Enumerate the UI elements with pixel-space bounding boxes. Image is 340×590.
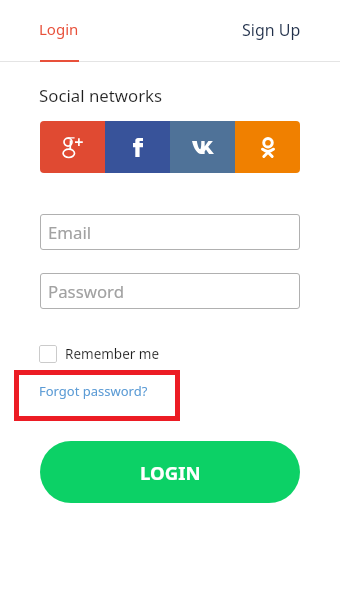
button[interactable]: Sign Up bbox=[170, 0, 340, 62]
button[interactable]: Login bbox=[0, 0, 170, 62]
button[interactable]: VKontakte bbox=[170, 121, 235, 173]
staticText: Forgot password? bbox=[39, 382, 148, 400]
staticText: Remember me bbox=[65, 345, 160, 363]
staticText: Sign Up bbox=[242, 19, 301, 41]
staticText: Password bbox=[48, 280, 124, 303]
staticText: Email bbox=[48, 221, 92, 244]
button[interactable]: Email bbox=[40, 214, 300, 250]
button[interactable]: Google Plus bbox=[40, 121, 105, 173]
button[interactable]: Remember me bbox=[39, 345, 160, 363]
staticText: LOGIN bbox=[140, 460, 201, 485]
button[interactable]: Forgot password? bbox=[33, 379, 153, 403]
button[interactable]: Password bbox=[40, 273, 300, 309]
button[interactable]: Facebook bbox=[105, 121, 170, 173]
button[interactable]: LOGIN bbox=[40, 441, 300, 503]
staticText: Social networks bbox=[39, 84, 163, 107]
button[interactable]: Odnoklassniki bbox=[235, 121, 300, 173]
staticText: Login bbox=[39, 19, 79, 39]
